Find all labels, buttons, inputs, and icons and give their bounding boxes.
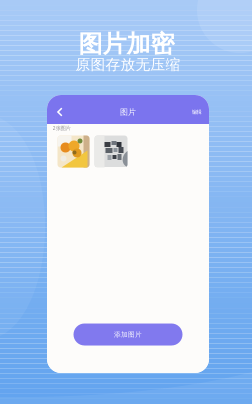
staticText: 2张图片 <box>53 124 71 132</box>
staticText: 编辑 <box>191 109 201 115</box>
staticText: 图片 <box>120 107 136 117</box>
button[interactable]: Back <box>52 103 68 121</box>
staticText: 添加图片 <box>114 330 142 339</box>
button[interactable]: 添加图片 <box>73 323 182 345</box>
button[interactable]: 编辑 <box>187 106 205 118</box>
staticText: 图片加密 <box>78 29 174 59</box>
staticText: 原图存放无压缩 <box>75 55 180 73</box>
